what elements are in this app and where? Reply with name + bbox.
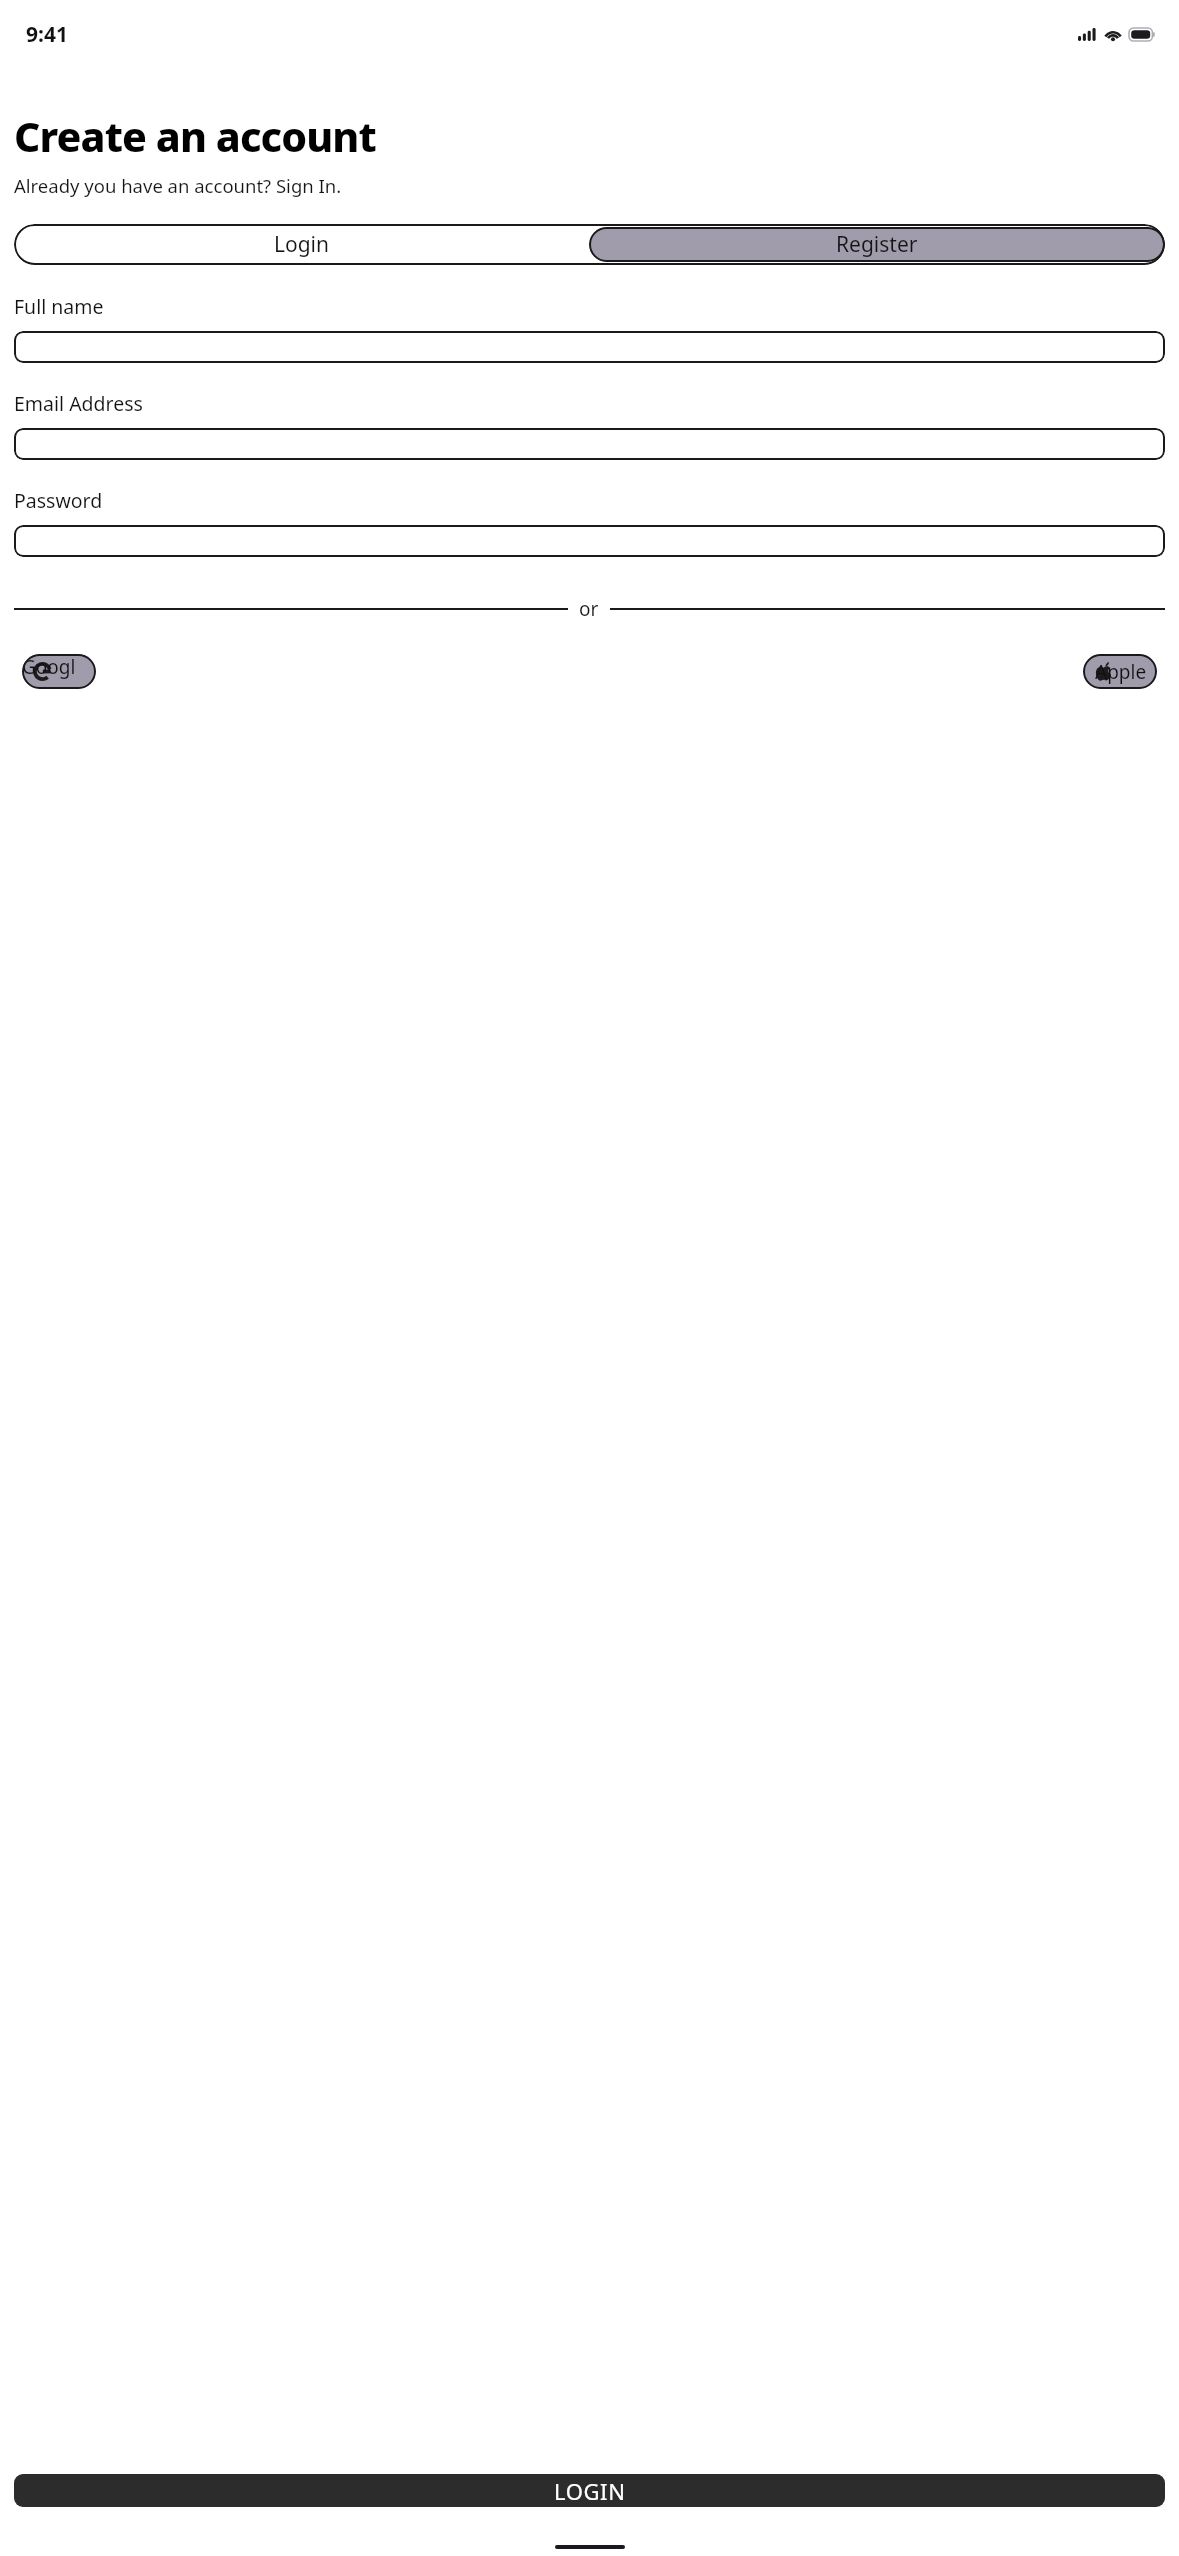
- staticText: Create an account: [14, 108, 376, 164]
- button[interactable]: Login: [14, 224, 589, 265]
- button[interactable]: LOGIN: [14, 2474, 1165, 2507]
- staticText: or: [579, 596, 599, 622]
- button[interactable]: [14, 525, 1165, 557]
- staticText: Apple: [1095, 659, 1147, 685]
- staticText: Google: [22, 654, 86, 689]
- staticText: LOGIN: [554, 2476, 626, 2506]
- button[interactable]: [14, 331, 1165, 363]
- staticText: Full name: [14, 293, 104, 320]
- button[interactable]: [14, 428, 1165, 460]
- staticText: Register: [836, 230, 918, 259]
- button[interactable]: Apple: [1083, 654, 1157, 689]
- staticText: Password: [14, 487, 103, 514]
- staticText: 9:41: [26, 20, 68, 49]
- button[interactable]: Google: [22, 654, 96, 689]
- button[interactable]: Already you have an account? Sign In.: [14, 173, 342, 198]
- button[interactable]: Register: [589, 227, 1165, 262]
- staticText: Email Address: [14, 390, 143, 417]
- staticText: Login: [274, 230, 330, 259]
